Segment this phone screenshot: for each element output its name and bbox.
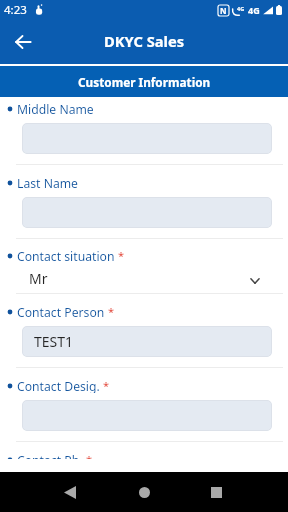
button[interactable]: Recents <box>196 472 236 512</box>
staticText: Middle Name <box>17 101 94 116</box>
button[interactable]: Last Name <box>0 165 288 239</box>
staticText: Contact Person <box>17 304 105 319</box>
staticText: Contact Ph. <box>17 452 83 459</box>
button[interactable]: Contact Person <box>0 294 288 368</box>
button[interactable]: Middle Name <box>0 97 288 165</box>
button[interactable]: Back <box>7 26 39 58</box>
button[interactable]: Back <box>50 472 90 512</box>
staticText: Mr <box>29 269 250 288</box>
staticText: Contact situation <box>17 248 115 263</box>
staticText: 4G <box>248 4 260 16</box>
staticText: * <box>103 378 110 393</box>
staticText: * <box>118 248 125 263</box>
staticText: Customer Information <box>78 74 211 90</box>
staticText: N <box>220 5 227 16</box>
staticText: Contact Desig. <box>17 378 100 393</box>
staticText: 4:23 <box>4 2 27 18</box>
staticText: * <box>108 304 115 319</box>
staticText: 4G <box>237 5 245 12</box>
button[interactable]: Home <box>124 472 164 512</box>
button[interactable]: Contact Desig. <box>0 368 288 442</box>
button[interactable]: Contact Ph. <box>0 442 288 459</box>
staticText: TEST1 <box>34 332 74 351</box>
staticText: DKYC Sales <box>104 31 185 51</box>
button[interactable]: Contact situation <box>0 239 288 294</box>
staticText: Last Name <box>17 175 78 190</box>
staticText: * <box>86 452 93 459</box>
